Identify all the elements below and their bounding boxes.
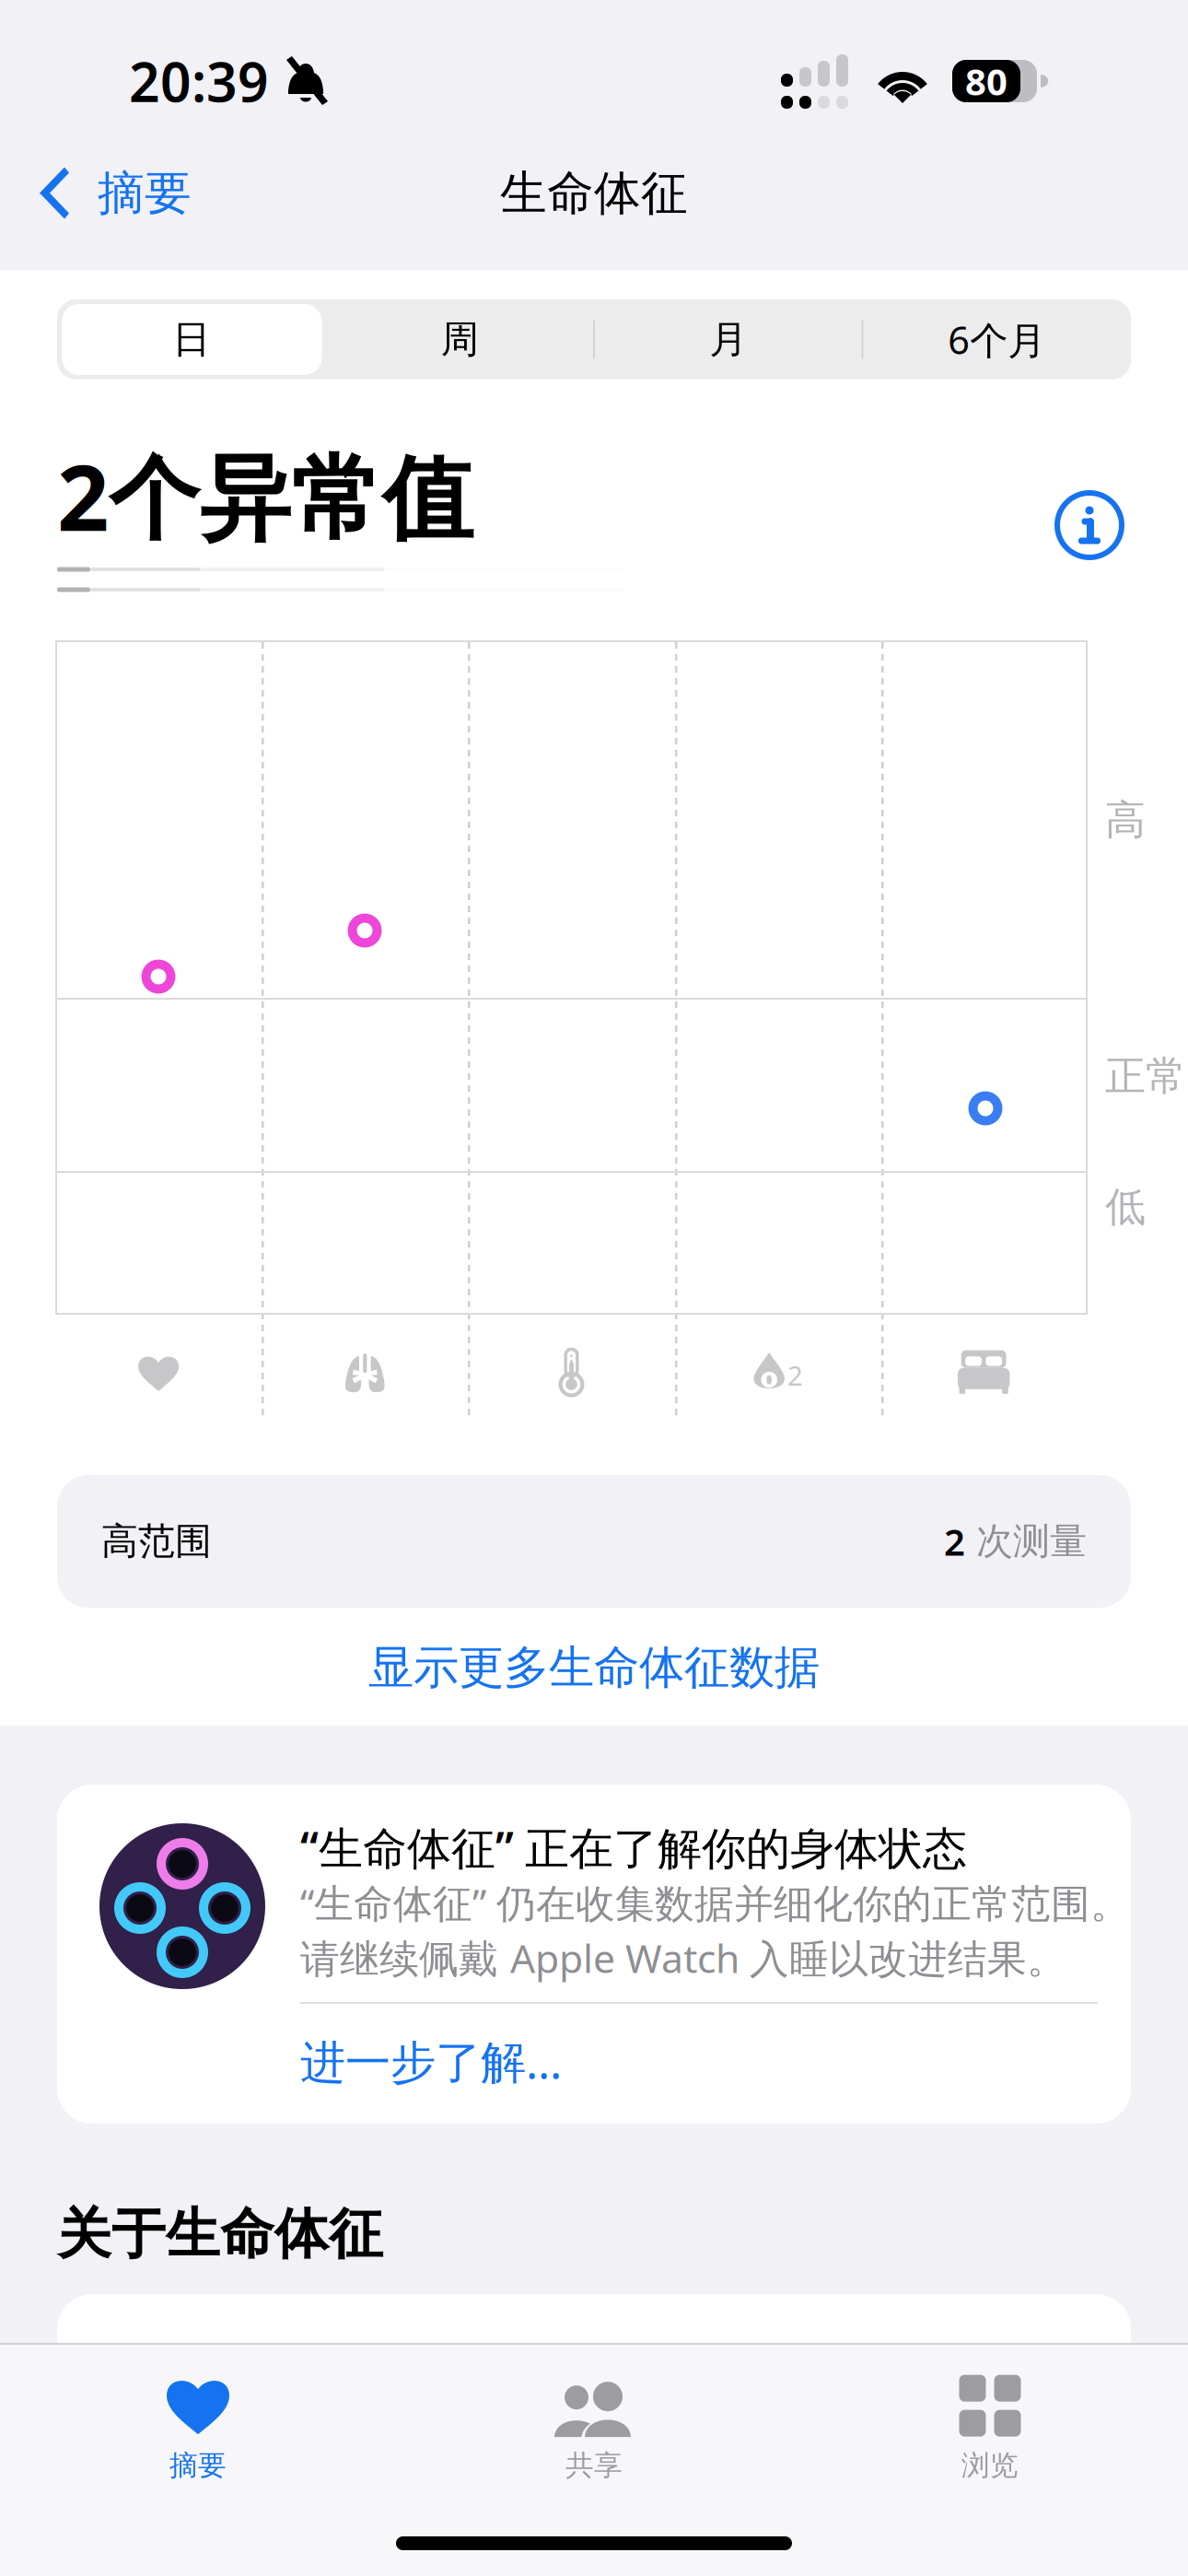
- button[interactable]: 月: [594, 299, 862, 380]
- staticText: “生命体征” 正在了解你的身体状态: [300, 1818, 967, 1877]
- staticText: 摘要: [98, 165, 192, 222]
- staticText: 日: [172, 316, 210, 363]
- button[interactable]: 摘要: [0, 2354, 396, 2501]
- staticText: 生命体征: [500, 165, 688, 222]
- staticText: 2: [944, 1517, 965, 1566]
- staticText: “生命体征” 仍在收集数据并细化你的正常范围。: [300, 1876, 1130, 1929]
- staticText: 请继续佩戴 Apple Watch 入睡以改进结果。: [300, 1932, 1066, 1984]
- staticText: 正常: [1105, 1051, 1186, 1101]
- button[interactable]: 摘要: [0, 146, 215, 241]
- staticText: 2: [790, 1352, 811, 1399]
- staticText: 月: [709, 316, 747, 363]
- button[interactable]: 浏览: [792, 2354, 1188, 2501]
- staticText: 低: [1105, 1182, 1146, 1232]
- staticText: 高: [1105, 795, 1146, 845]
- button[interactable]: 日: [57, 299, 326, 380]
- staticText: 80: [965, 57, 1007, 105]
- button[interactable]: 共享: [396, 2354, 792, 2501]
- staticText: 摘要: [169, 2448, 227, 2483]
- staticText: 高范围: [101, 1519, 212, 1564]
- staticText: 周: [441, 316, 479, 363]
- staticText: 次测量: [965, 1519, 1087, 1564]
- button[interactable]: 显示更多生命体征数据: [57, 1617, 1131, 1718]
- button[interactable]: 6个月: [862, 299, 1131, 380]
- button[interactable]: 周: [326, 299, 594, 380]
- button[interactable]: 关于生命体征: [1048, 484, 1131, 567]
- staticText: 20:39: [129, 45, 269, 117]
- button[interactable]: 高范围: [57, 1475, 1131, 1608]
- staticText: 浏览: [961, 2448, 1019, 2483]
- staticText: 关于生命体征: [57, 2201, 383, 2267]
- staticText: 6个月: [948, 314, 1045, 365]
- staticText: 显示更多生命体征数据: [368, 1640, 820, 1695]
- staticText: 进一步了解...: [300, 2031, 562, 2091]
- staticText: 共享: [565, 2448, 623, 2483]
- button[interactable]: 进一步了解...: [300, 2004, 1098, 2118]
- staticText: 2个异常值: [57, 435, 473, 556]
